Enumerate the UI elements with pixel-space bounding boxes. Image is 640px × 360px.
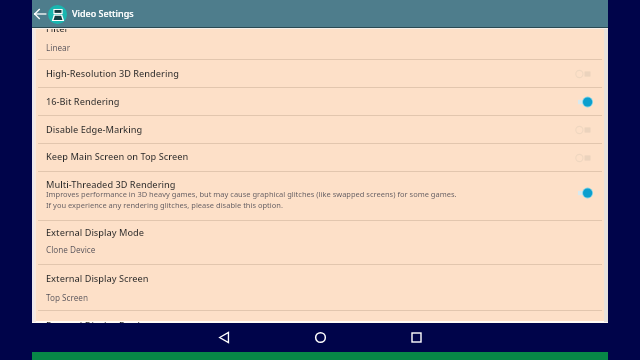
button[interactable]: External Display Mode (32, 221, 608, 265)
staticText: High-Resolution 3D Rendering (46, 67, 573, 80)
button[interactable]: Switch off (573, 123, 597, 137)
button[interactable]: Filter (32, 29, 608, 60)
staticText: Disable Edge-Marking (46, 123, 573, 136)
staticText: External Display Mode (46, 226, 145, 239)
staticText: Video Settings (72, 7, 134, 19)
staticText: Filter (46, 29, 69, 35)
staticText: Keep Main Screen on Top Screen (46, 150, 573, 163)
staticText: 16-Bit Rendering (46, 95, 573, 108)
button[interactable]: Switch off (573, 151, 597, 165)
staticText: Linear (46, 42, 71, 53)
button[interactable]: External Display Border (32, 311, 608, 323)
button[interactable]: Switch off (573, 67, 597, 81)
staticText: If you experience any rendering glitches… (46, 200, 283, 210)
button[interactable]: Back (210, 323, 238, 352)
staticText: Multi-Threaded 3D Rendering (46, 178, 176, 191)
button[interactable]: Disable Edge-Marking (32, 116, 608, 144)
button[interactable]: High-Resolution 3D Rendering (32, 60, 608, 88)
staticText: Clone Device (46, 244, 96, 255)
button[interactable]: Switch on (573, 95, 597, 109)
button[interactable]: Recent apps (402, 323, 430, 352)
button[interactable]: External Display Screen (32, 265, 608, 311)
button[interactable]: Multi-Threaded 3D Rendering (32, 172, 608, 221)
staticText: Improves performance in 3D heavy games, … (46, 189, 457, 199)
button[interactable]: Navigate up (33, 0, 47, 27)
button[interactable]: Keep Main Screen on Top Screen (32, 144, 608, 172)
button[interactable]: Switch on (573, 186, 597, 200)
staticText: Top Screen (46, 292, 89, 303)
staticText: External Display Screen (46, 272, 149, 285)
button[interactable]: Home (306, 323, 334, 352)
button[interactable]: 16-Bit Rendering (32, 88, 608, 116)
staticText: External Display Border (46, 319, 150, 323)
